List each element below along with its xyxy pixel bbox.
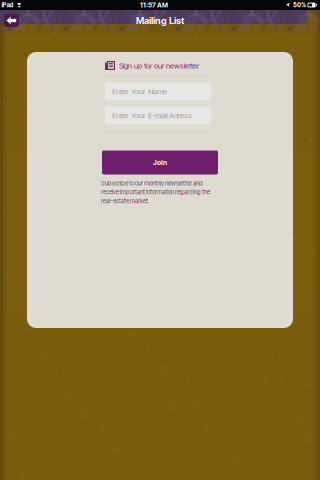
staticText: iPad [1,1,13,9]
staticText: 11:57 AM [140,1,168,9]
staticText: real-estate market. [101,197,149,205]
staticText: Sign up for our newsletter [119,61,199,70]
button[interactable]: Back [4,14,19,27]
staticText: Subscribe to our monthly newsletter and [101,179,203,187]
staticText: Enter Your E-mail Adress [112,111,192,120]
staticText: receive important information regarding … [101,188,210,196]
staticText: Mailing List [136,15,184,26]
staticText: 50% [293,1,306,9]
staticText: Join [153,158,167,167]
staticText: Enter Your Name [112,87,167,96]
button[interactable]: Join [102,150,218,174]
